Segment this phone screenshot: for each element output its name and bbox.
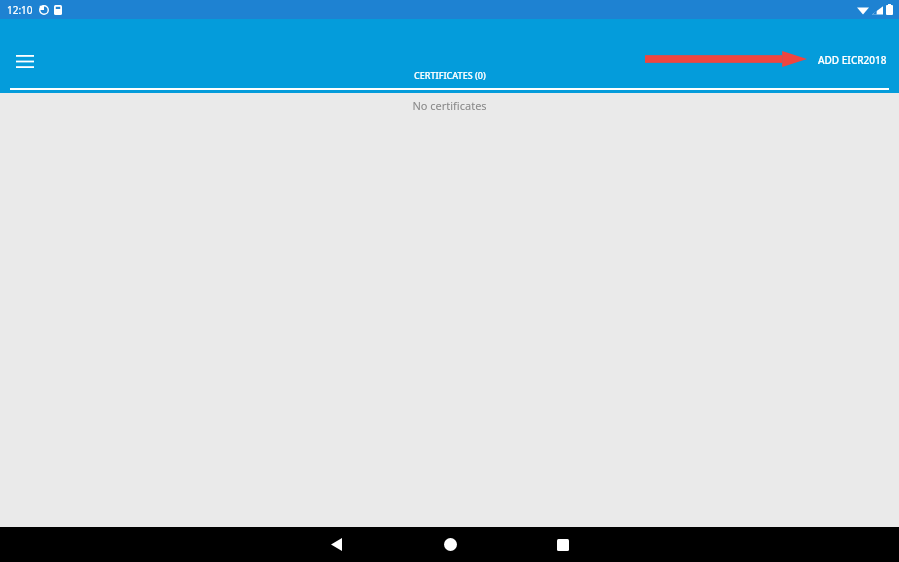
staticText: CERTIFICATES (0) [414,69,486,81]
button[interactable]: Back [316,527,356,562]
button[interactable]: Home [430,527,470,562]
button[interactable]: Recent apps [543,527,583,562]
staticText: ADD EICR2018 [818,53,887,67]
button[interactable]: ADD EICR2018 [806,46,899,74]
staticText: No certificates [412,98,487,113]
button[interactable]: CERTIFICATES (0) [0,69,899,93]
button[interactable]: Open navigation menu [10,46,40,76]
staticText: 12:10 [7,3,33,17]
